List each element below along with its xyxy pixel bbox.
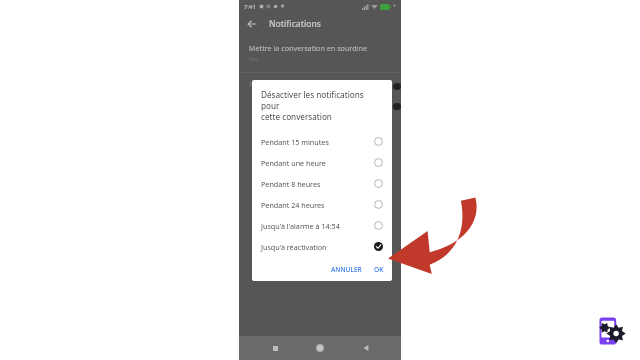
- staticText: Pendant 24 heures: [261, 200, 325, 210]
- staticText: 7:41: [244, 3, 256, 11]
- button[interactable]: Mettre la conversation en sourdine: [239, 39, 401, 66]
- staticText: Notifications: [269, 18, 321, 30]
- button[interactable]: Pendant 15 minutes: [252, 131, 392, 152]
- button[interactable]: Pendant 8 heures: [252, 173, 392, 194]
- button[interactable]: Jusqu'à l'alarme à 14:54: [252, 215, 392, 236]
- button[interactable]: Back: [243, 15, 261, 33]
- staticText: ANNULER: [331, 265, 362, 274]
- button[interactable]: ANNULER: [326, 261, 367, 278]
- staticText: OK: [374, 265, 384, 274]
- button[interactable]: Pendant 24 heures: [252, 194, 392, 215]
- button[interactable]: Home: [310, 338, 330, 358]
- staticText: Oui: [249, 55, 259, 62]
- button[interactable]: Back: [356, 338, 376, 358]
- staticText: Recevoir des notifications pour: [249, 80, 345, 89]
- button[interactable]: Recents: [265, 338, 285, 358]
- staticText: Pendant 15 minutes: [261, 137, 329, 147]
- staticText: Jusqu'à l'alarme à 14:54: [261, 221, 340, 231]
- staticText: Jusqu'à réactivation: [261, 242, 327, 252]
- staticText: Mettre la conversation en sourdine: [249, 43, 367, 53]
- button[interactable]: Pendant une heure: [252, 152, 392, 173]
- staticText: Désactiver les notifications pour cette …: [261, 89, 384, 122]
- button[interactable]: OK: [369, 261, 392, 278]
- button[interactable]: Jusqu'à réactivation: [252, 236, 392, 257]
- staticText: +: [393, 3, 396, 10]
- staticText: Pendant 8 heures: [261, 179, 321, 189]
- button[interactable]: App logo: [588, 308, 634, 354]
- staticText: Pendant une heure: [261, 158, 326, 168]
